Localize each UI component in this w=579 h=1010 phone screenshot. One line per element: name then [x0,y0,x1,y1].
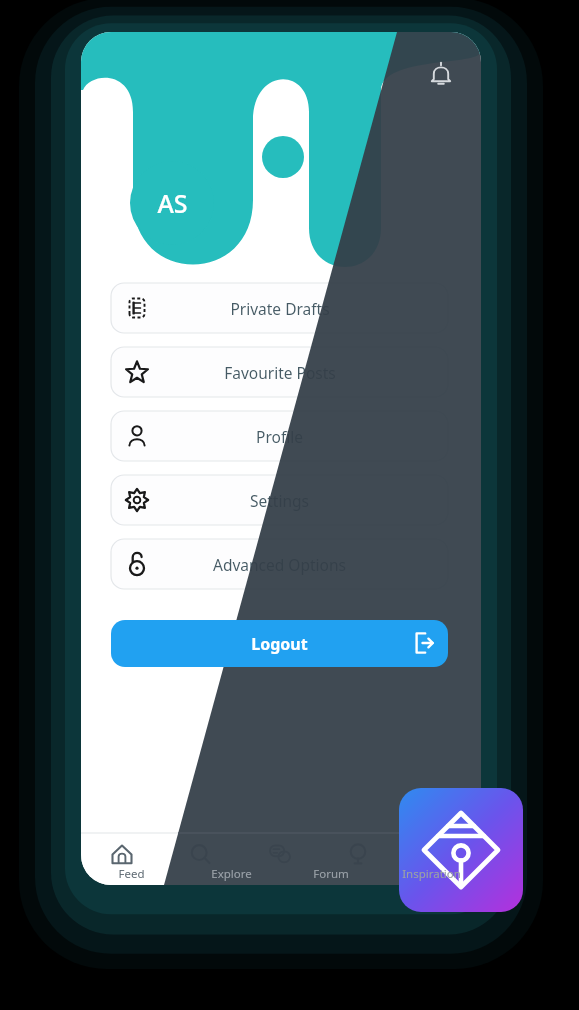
staticText: Inspiration [402,866,461,882]
staticText: Private Drafts [230,298,330,319]
button[interactable]: Notifications [419,53,465,99]
staticText: Inspiration [402,866,461,882]
button[interactable]: Profile [111,411,448,461]
button[interactable]: Logout [111,620,448,667]
staticText: Feed [118,866,145,882]
button[interactable]: Private Drafts [111,283,448,333]
button[interactable]: Advanced Options [111,539,448,589]
button[interactable]: Favourite Posts [111,347,448,397]
button[interactable]: Inspiration [381,833,481,885]
button[interactable]: Forum [281,833,381,885]
staticText: Logout [251,633,308,655]
staticText: Profile [256,426,303,447]
button[interactable]: Feed [81,833,181,885]
staticText: Forum [313,866,349,882]
staticText: Explore [211,866,252,882]
button[interactable]: Explore [181,833,281,885]
staticText: Settings [250,490,309,511]
button[interactable]: Settings [111,475,448,525]
staticText: Favourite Posts [224,362,336,383]
staticText: Forum [313,866,349,882]
staticText: Explore [211,866,252,882]
staticText: AS [157,186,188,220]
staticText: Advanced Options [213,554,346,575]
